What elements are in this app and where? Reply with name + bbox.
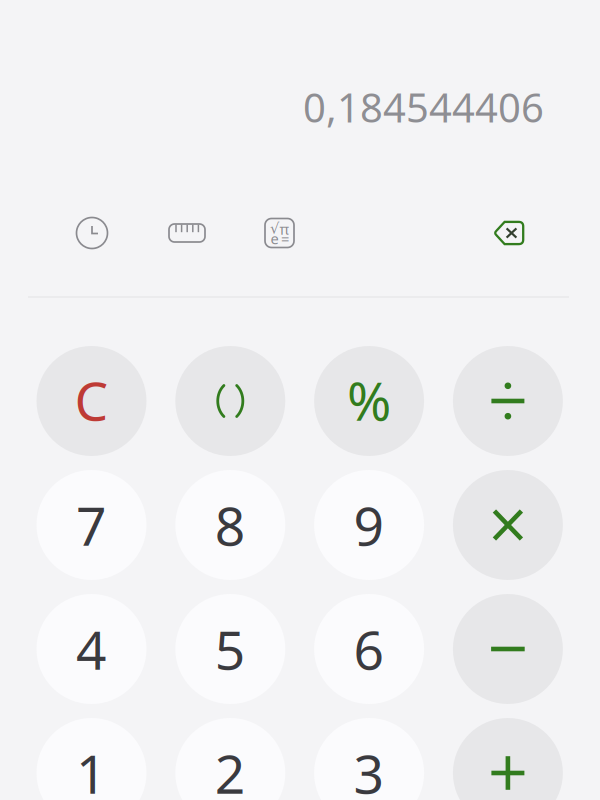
button[interactable]: 2 <box>175 718 285 800</box>
staticText: 0,184544406 <box>303 80 544 133</box>
staticText: 7 <box>76 490 107 560</box>
button[interactable]: Unit converter <box>165 211 209 255</box>
staticText: e <box>270 229 278 248</box>
staticText: % <box>347 365 391 435</box>
staticText: √ <box>270 220 279 237</box>
button[interactable]: 7 <box>36 470 146 580</box>
staticText: = <box>281 229 289 248</box>
staticText: π <box>279 219 289 239</box>
staticText: 3 <box>354 738 385 800</box>
staticText: C <box>74 365 108 435</box>
button[interactable]: 5 <box>175 594 285 704</box>
button[interactable]: % <box>314 346 424 456</box>
button[interactable]: 8 <box>175 470 285 580</box>
button[interactable]: Multiply <box>453 470 563 580</box>
button[interactable]: Delete <box>487 213 531 253</box>
button[interactable]: Plus <box>453 718 563 800</box>
button[interactable]: 3 <box>314 718 424 800</box>
button[interactable]: 1 <box>36 718 146 800</box>
button[interactable]: C <box>36 346 146 456</box>
staticText: 4 <box>76 614 107 684</box>
button[interactable]: Minus <box>453 594 563 704</box>
button[interactable]: Parentheses <box>175 346 285 456</box>
button[interactable]: 4 <box>36 594 146 704</box>
staticText: 6 <box>354 614 385 684</box>
staticText: 9 <box>354 490 385 560</box>
button[interactable]: Scientific calculator <box>257 211 301 255</box>
staticText: 8 <box>215 490 246 560</box>
button[interactable]: 9 <box>314 470 424 580</box>
button[interactable]: History <box>70 211 114 255</box>
staticText: 1 <box>76 738 107 800</box>
staticText: 5 <box>215 614 246 684</box>
button[interactable]: Divide <box>453 346 563 456</box>
button[interactable]: 6 <box>314 594 424 704</box>
staticText: 2 <box>215 738 246 800</box>
